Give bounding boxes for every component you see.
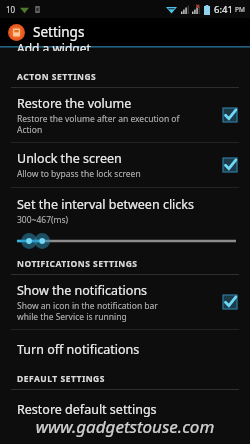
button[interactable]: Add a widget (0, 48, 250, 59)
staticText: Restore the volume after an execution of… (17, 113, 180, 135)
button[interactable]: Restore default settings (0, 390, 250, 429)
staticText: 6:41 (214, 3, 233, 16)
staticText: Show the notifications (17, 282, 148, 299)
button[interactable]: Turn off notifications (0, 330, 250, 369)
button[interactable]: Unlock the screen (0, 143, 250, 187)
other: Interval range slider (17, 232, 236, 250)
staticText: Settings (33, 23, 85, 41)
staticText: NOTIFICATIONS SETTINGS (17, 258, 138, 270)
button[interactable]: Show the notifications (0, 275, 250, 329)
button[interactable]: Toggle setting (220, 105, 240, 125)
button[interactable]: Set the interval between clicks (0, 188, 250, 256)
button[interactable]: Toggle setting (220, 292, 240, 312)
staticText: Show an icon in the notification bar whi… (17, 300, 158, 322)
button[interactable]: Settings (0, 18, 250, 46)
staticText: Restore the volume (17, 95, 132, 112)
staticText: 300~467(ms) (17, 214, 69, 226)
staticText: 10 (6, 4, 16, 15)
button[interactable]: Toggle setting (220, 155, 240, 175)
staticText: www.gadgetstouse.com (0, 415, 250, 438)
staticText: Allow to bypass the lock screen (17, 168, 141, 180)
staticText: Add a widget (17, 40, 91, 51)
staticText: Unlock the screen (17, 150, 122, 167)
staticText: DEFAULT SETTINGS (17, 373, 105, 385)
staticText: Set the interval between clicks (17, 196, 194, 213)
button[interactable]: Restore the volume (0, 88, 250, 142)
staticText: PM (235, 5, 245, 14)
staticText: ACTON SETTINGS (17, 71, 97, 83)
staticText: Restore default settings (17, 401, 157, 418)
staticText: Turn off notifications (17, 341, 140, 358)
